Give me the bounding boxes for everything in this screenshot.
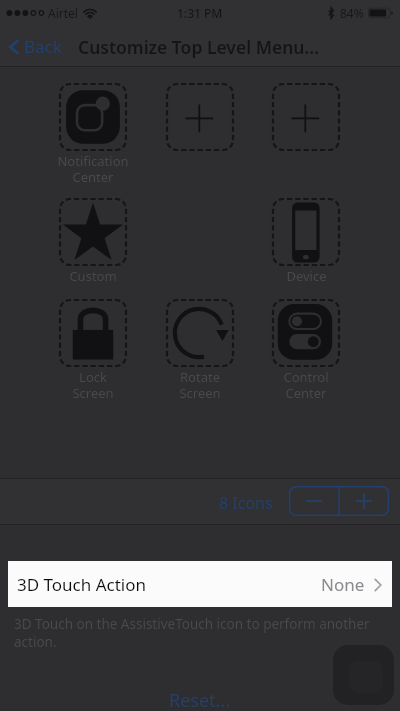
staticText: Airtel: [48, 5, 78, 21]
button[interactable]: Device: [272, 198, 340, 266]
button[interactable]: Control Center: [272, 299, 340, 367]
button[interactable]: Remove icon: [289, 486, 339, 516]
staticText: None: [321, 573, 365, 596]
staticText: Rotate Screen: [179, 368, 221, 401]
staticText: 84%: [340, 5, 364, 21]
button[interactable]: Add icon: [272, 83, 340, 151]
staticText: Custom: [69, 267, 117, 285]
button[interactable]: Custom: [59, 198, 127, 266]
button[interactable]: Lock Screen: [59, 299, 127, 367]
staticText: Back: [24, 35, 62, 58]
staticText: Customize Top Level Menu...: [78, 35, 319, 59]
button[interactable]: Back: [0, 35, 68, 58]
staticText: 3D Touch on the AssistiveTouch icon to p…: [14, 615, 386, 651]
button[interactable]: 3D Touch Action: [8, 561, 392, 607]
button[interactable]: Add icon: [166, 83, 234, 151]
staticText: Device: [286, 267, 327, 285]
staticText: Control Center: [283, 368, 329, 401]
staticText: 1:31 PM: [177, 5, 223, 21]
staticText: 8 Icons: [219, 492, 273, 514]
button[interactable]: Add icon: [339, 486, 389, 516]
staticText: Lock Screen: [72, 368, 114, 401]
staticText: Notification Center: [57, 152, 129, 185]
button[interactable]: Notification Center: [59, 83, 127, 151]
button[interactable]: Reset...: [169, 688, 231, 711]
staticText: 3D Touch Action: [17, 573, 147, 596]
button[interactable]: Rotate Screen: [166, 299, 234, 367]
